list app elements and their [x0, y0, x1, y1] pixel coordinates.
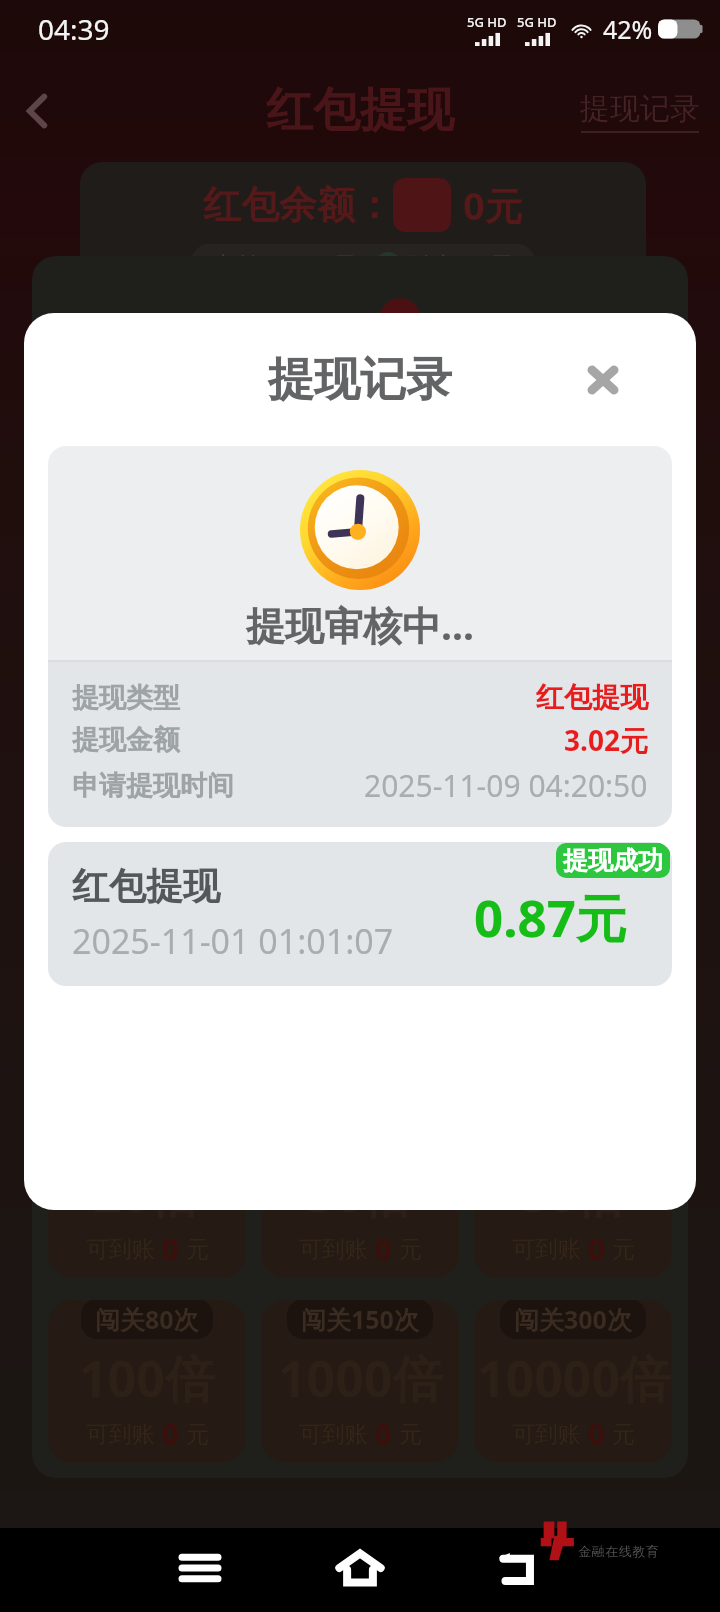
staticText: 可到账 [512, 1420, 581, 1449]
staticText: 20倍 [93, 1159, 201, 1227]
staticText: 1000倍 [278, 1344, 443, 1412]
staticText: 0 [155, 1230, 186, 1268]
button[interactable]: Home [316, 1526, 404, 1610]
staticText: 可到账 [86, 1235, 155, 1264]
button[interactable]: Close [577, 354, 629, 406]
staticText: 可到账 [512, 1235, 581, 1264]
button[interactable]: 闯关150次 [261, 1300, 459, 1463]
staticText: 元 [399, 1420, 422, 1449]
staticText: 0.87元 [474, 882, 627, 952]
staticText: 0 [581, 1415, 612, 1453]
staticText: 可到账 [86, 1420, 155, 1449]
staticText: 提现记录 [268, 351, 452, 409]
staticText: 金融在线教育 [578, 1543, 659, 1559]
staticText: 10000倍 [477, 1344, 670, 1412]
staticText: 到账1.8元 [404, 248, 515, 282]
button[interactable]: 闯关80次 [48, 1300, 246, 1463]
staticText: 0 [368, 1230, 399, 1268]
staticText: 可到账 [299, 1235, 368, 1264]
staticText: 5G HD [517, 13, 557, 31]
staticText: 红包提现 [536, 680, 648, 715]
staticText: 5G HD [467, 13, 507, 31]
button[interactable]: 闯关300次 [474, 1300, 672, 1463]
staticText: 闯关80次 [95, 1302, 199, 1336]
staticText: 元 [186, 1420, 209, 1449]
staticText: 80倍 [519, 1159, 627, 1227]
staticText: 闯关300次 [514, 1302, 632, 1336]
button[interactable]: 闯关50次 [261, 1115, 459, 1278]
staticText: 04:39 [38, 10, 110, 48]
staticText: 元 [399, 1235, 422, 1264]
button[interactable]: Recent apps [156, 1526, 244, 1610]
staticText: 2025-11-01 01:01:07 [72, 918, 394, 964]
staticText: 提现成功 [563, 845, 663, 876]
staticText: 提现记录 [580, 90, 700, 128]
staticText: 闯关150次 [301, 1302, 419, 1336]
staticText: 元 [186, 1235, 209, 1264]
button[interactable]: 提现记录 [580, 90, 700, 133]
staticText: 0元 [463, 179, 523, 231]
staticText: 红包提现 [266, 81, 454, 140]
staticText: 元 [612, 1235, 635, 1264]
staticText: 2025-11-09 04:20:50 [364, 765, 648, 806]
button[interactable]: 闯关60次 [474, 1115, 672, 1278]
staticText: 元 [612, 1420, 635, 1449]
button[interactable]: Back [6, 80, 68, 142]
staticText: 0 [155, 1415, 186, 1453]
staticText: 当前10000元= [211, 248, 372, 282]
staticText: 提现审核中... [246, 598, 474, 651]
button[interactable]: Back [473, 1526, 561, 1610]
staticText: 0 [368, 1415, 399, 1453]
staticText: 50倍 [306, 1159, 414, 1227]
staticText: 100倍 [79, 1344, 215, 1412]
staticText: 3.02元 [564, 721, 648, 759]
staticText: 0 [581, 1230, 612, 1268]
button[interactable]: 闯关30次 [48, 1115, 246, 1278]
staticText: 红包提现 [72, 863, 220, 910]
staticText: 42% [603, 12, 653, 46]
staticText: 提现类型 [72, 681, 180, 715]
staticText: 申请提现时间 [72, 769, 234, 803]
staticText: 提现金额 [72, 723, 180, 757]
staticText: 红包余额： [203, 181, 393, 229]
staticText: 可到账 [299, 1420, 368, 1449]
button[interactable]: 红包提现 [48, 842, 672, 986]
